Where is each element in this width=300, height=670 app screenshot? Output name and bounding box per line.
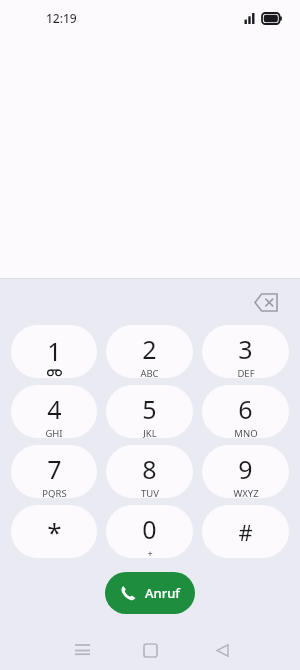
button[interactable]: # (202, 505, 289, 558)
staticText: 2 (142, 332, 157, 366)
button[interactable]: Backspace (244, 280, 288, 324)
staticText: # (238, 517, 253, 547)
staticText: 7 (47, 452, 62, 486)
staticText: Anruf (145, 584, 180, 602)
staticText: PQRS (42, 487, 67, 498)
staticText: 8 (142, 452, 157, 486)
staticText: 6 (238, 392, 253, 426)
button[interactable]: 8 (106, 445, 193, 498)
staticText: 12:19 (46, 10, 77, 26)
button[interactable]: Back (206, 634, 238, 666)
button[interactable]: * (11, 505, 97, 558)
staticText: 3 (238, 332, 253, 366)
button[interactable]: 0 (106, 505, 193, 558)
staticText: JKL (143, 427, 157, 438)
button[interactable]: 4 (11, 385, 97, 438)
button[interactable]: Home (134, 634, 166, 666)
button[interactable]: 6 (202, 385, 289, 438)
staticText: WXYZ (233, 487, 259, 498)
staticText: MNO (234, 427, 258, 438)
staticText: 0 (142, 512, 157, 546)
staticText: TUV (141, 487, 159, 498)
staticText: ABC (140, 367, 159, 378)
button[interactable]: Recents (66, 634, 98, 666)
staticText: 9 (238, 452, 253, 486)
button[interactable]: 9 (202, 445, 289, 498)
staticText: 4 (47, 392, 62, 426)
button[interactable]: 5 (106, 385, 193, 438)
button[interactable]: 3 (202, 325, 289, 378)
button[interactable]: 2 (106, 325, 193, 378)
button[interactable]: Anruf (105, 572, 195, 614)
staticText: * (47, 514, 62, 549)
staticText: + (147, 547, 153, 558)
staticText: GHI (45, 427, 63, 438)
button[interactable]: 7 (11, 445, 97, 498)
staticText: 1 (47, 334, 62, 368)
button[interactable]: 1 (11, 325, 97, 378)
staticText: 5 (142, 392, 157, 426)
staticText: DEF (237, 367, 255, 378)
